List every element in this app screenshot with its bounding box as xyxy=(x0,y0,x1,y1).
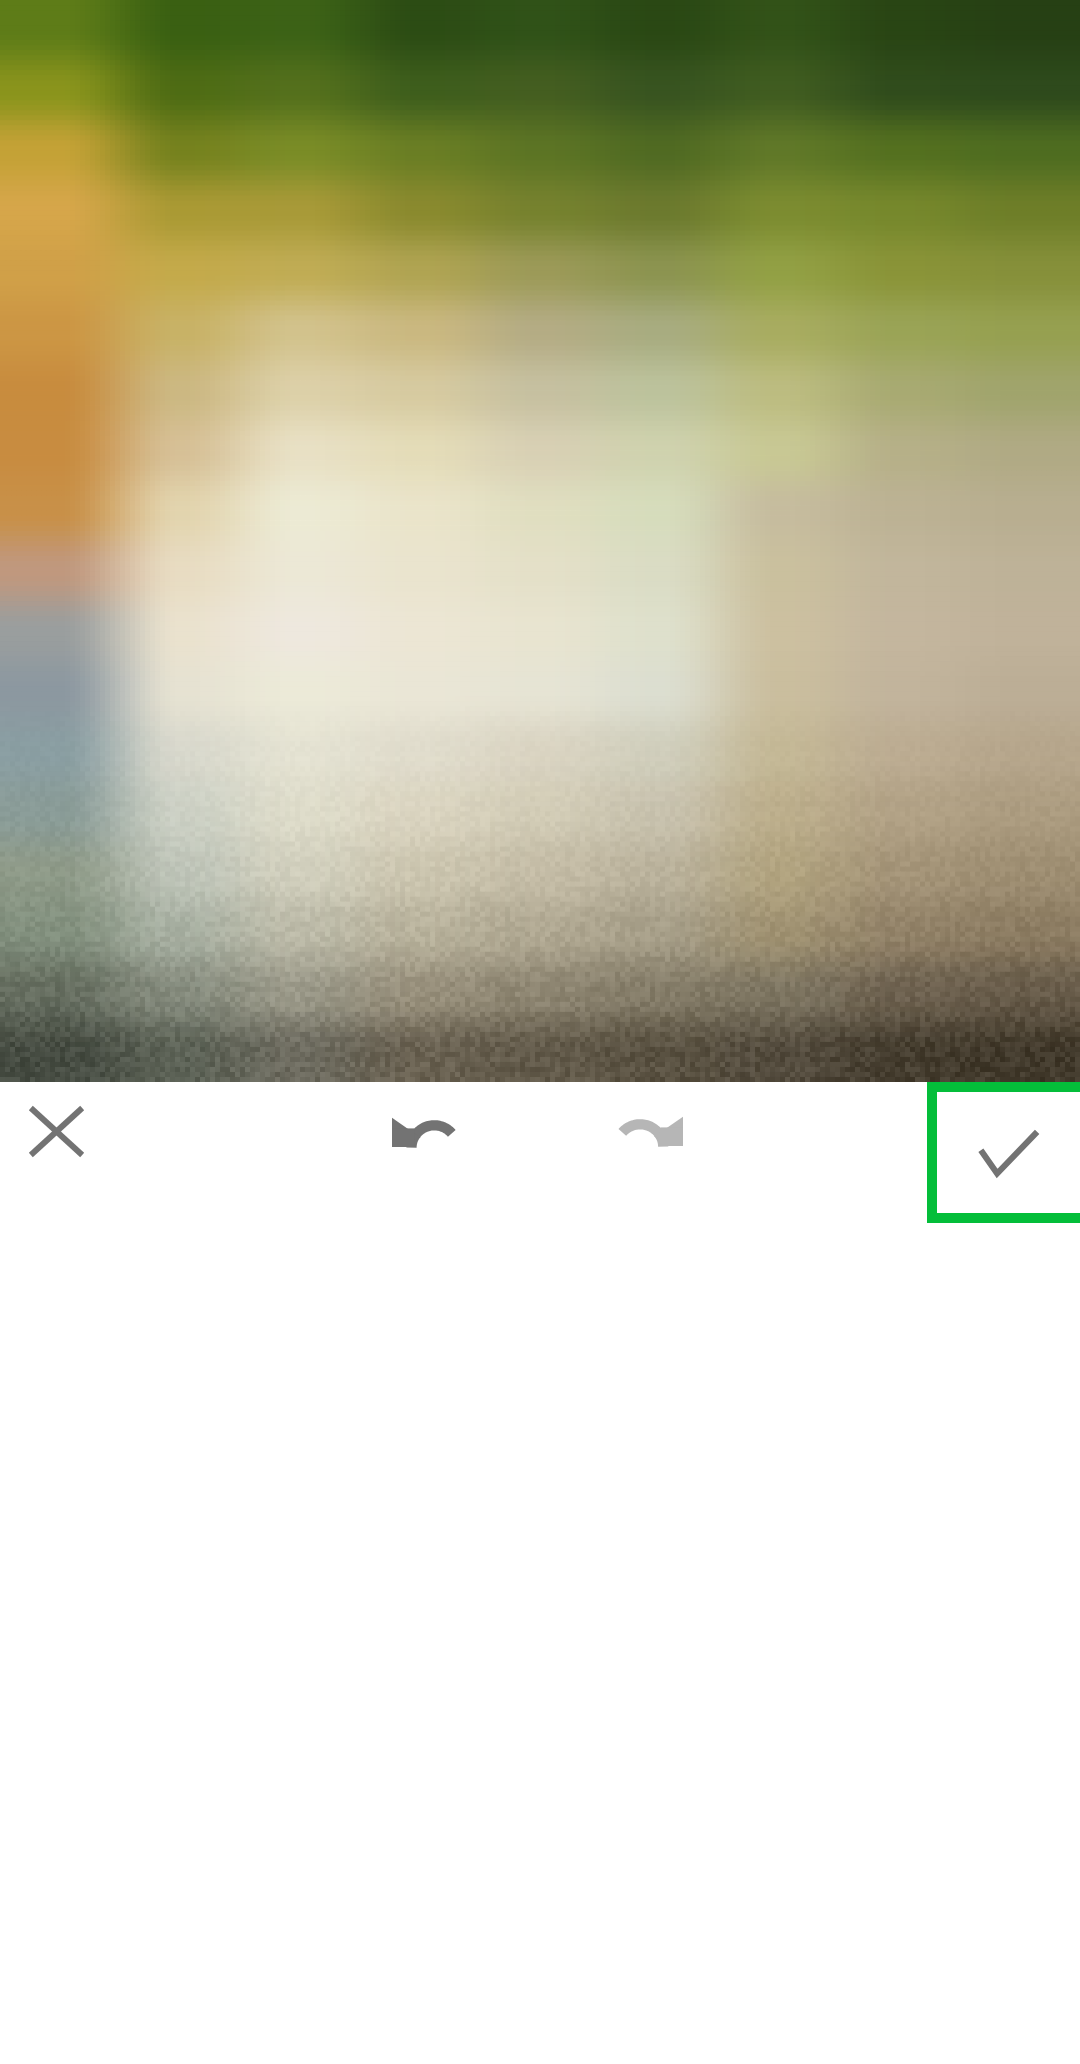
button[interactable]: Cancel xyxy=(8,1083,104,1179)
button[interactable]: Done xyxy=(927,1082,1080,1223)
button[interactable]: Redo xyxy=(602,1082,698,1178)
button[interactable]: Undo xyxy=(376,1083,472,1179)
